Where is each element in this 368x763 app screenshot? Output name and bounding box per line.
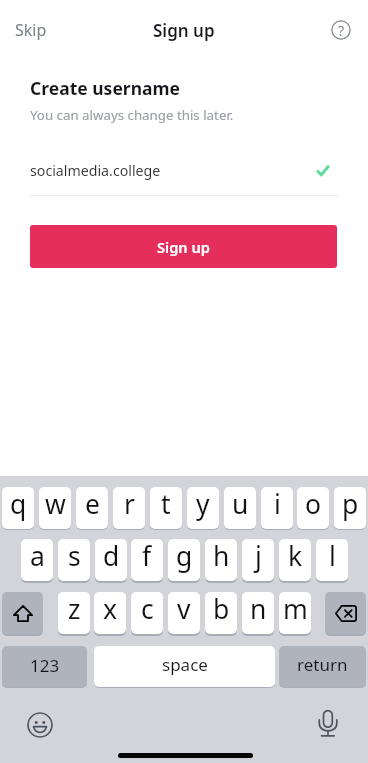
button[interactable]: space bbox=[94, 646, 275, 687]
staticText: i bbox=[274, 487, 281, 522]
button[interactable]: y bbox=[187, 487, 219, 529]
staticText: ? bbox=[338, 21, 345, 40]
staticText: socialmedia.college bbox=[30, 161, 161, 180]
staticText: p bbox=[342, 487, 359, 522]
button[interactable]: c bbox=[131, 592, 163, 634]
staticText: f bbox=[142, 539, 152, 574]
button[interactable]: p bbox=[334, 487, 366, 529]
button[interactable]: n bbox=[242, 592, 274, 634]
staticText: w bbox=[45, 487, 66, 522]
staticText: c bbox=[141, 592, 154, 627]
staticText: e bbox=[85, 487, 100, 522]
staticText: n bbox=[250, 592, 267, 627]
button[interactable]: Sign up bbox=[30, 225, 337, 268]
staticText: u bbox=[232, 487, 249, 522]
staticText: x bbox=[103, 592, 118, 627]
button[interactable]: m bbox=[279, 592, 311, 634]
button[interactable]: Voice input bbox=[314, 705, 342, 739]
staticText: m bbox=[283, 592, 308, 627]
button[interactable]: f bbox=[131, 539, 163, 581]
staticText: o bbox=[305, 487, 322, 522]
button[interactable]: x bbox=[94, 592, 126, 634]
button[interactable]: z bbox=[58, 592, 90, 634]
staticText: space bbox=[162, 653, 208, 676]
button[interactable]: Skip bbox=[7, 12, 55, 48]
staticText: q bbox=[10, 487, 27, 522]
button[interactable]: b bbox=[205, 592, 237, 634]
staticText: Sign up bbox=[153, 19, 215, 42]
button[interactable]: 123 bbox=[2, 646, 87, 687]
staticText: a bbox=[30, 539, 45, 574]
staticText: v bbox=[177, 592, 191, 627]
staticText: l bbox=[329, 539, 336, 574]
staticText: z bbox=[68, 592, 81, 627]
staticText: g bbox=[176, 539, 193, 574]
staticText: Create username bbox=[30, 76, 181, 100]
button[interactable]: g bbox=[168, 539, 200, 581]
staticText: 123 bbox=[30, 654, 60, 677]
staticText: k bbox=[288, 539, 303, 574]
button[interactable]: h bbox=[205, 539, 237, 581]
staticText: r bbox=[124, 487, 135, 522]
staticText: j bbox=[255, 539, 262, 574]
staticText: d bbox=[103, 539, 120, 574]
staticText: y bbox=[196, 487, 210, 522]
button[interactable]: v bbox=[168, 592, 200, 634]
button[interactable]: socialmedia.college bbox=[30, 152, 338, 190]
button[interactable]: Help bbox=[331, 20, 351, 40]
button[interactable]: t bbox=[150, 487, 182, 529]
staticText: t bbox=[161, 487, 171, 522]
staticText: b bbox=[213, 592, 230, 627]
staticText: Sign up bbox=[157, 237, 210, 257]
button[interactable]: Backspace bbox=[325, 592, 366, 634]
button[interactable]: a bbox=[21, 539, 53, 581]
button[interactable]: k bbox=[279, 539, 311, 581]
staticText: s bbox=[68, 539, 81, 574]
button[interactable]: Shift bbox=[2, 592, 43, 634]
staticText: h bbox=[213, 539, 230, 574]
button[interactable]: w bbox=[39, 487, 71, 529]
button[interactable]: l bbox=[316, 539, 348, 581]
button[interactable]: o bbox=[297, 487, 329, 529]
button[interactable]: Emoji bbox=[27, 712, 53, 738]
button[interactable]: d bbox=[95, 539, 127, 581]
button[interactable]: i bbox=[261, 487, 293, 529]
staticText: Skip bbox=[15, 19, 47, 41]
button[interactable]: s bbox=[58, 539, 90, 581]
staticText: You can always change this later. bbox=[30, 106, 234, 124]
button[interactable]: j bbox=[242, 539, 274, 581]
button[interactable]: e bbox=[76, 487, 108, 529]
button[interactable]: q bbox=[2, 487, 34, 529]
button[interactable]: r bbox=[113, 487, 145, 529]
button[interactable]: u bbox=[224, 487, 256, 529]
staticText: return bbox=[297, 653, 348, 676]
button[interactable]: return bbox=[279, 646, 366, 687]
